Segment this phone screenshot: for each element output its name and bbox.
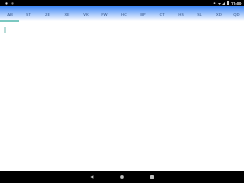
button[interactable]: XE (57, 6, 76, 21)
staticText: SL (197, 11, 202, 17)
button[interactable]: 2E (38, 6, 57, 21)
staticText: 11:00 (231, 1, 242, 6)
button[interactable]: HC (114, 6, 133, 21)
button[interactable]: FW (95, 6, 114, 21)
staticText: QD (233, 11, 240, 17)
button[interactable]: VK (76, 6, 95, 21)
staticText: HS (178, 11, 184, 17)
button[interactable]: Recents (146, 171, 158, 183)
button[interactable]: ST (19, 6, 38, 21)
staticText: 2E (45, 11, 50, 17)
staticText: AB (7, 11, 13, 17)
staticText: VK (83, 11, 89, 17)
staticText: BP (140, 11, 146, 17)
button[interactable]: CT (152, 6, 171, 21)
button[interactable]: BP (133, 6, 152, 21)
staticText: XE (64, 11, 70, 17)
staticText: XD (216, 11, 222, 17)
button[interactable]: Back (86, 171, 98, 183)
button[interactable]: AB (0, 6, 19, 21)
button[interactable]: QD (228, 6, 244, 21)
staticText: FW (101, 11, 108, 17)
staticText: CT (159, 11, 165, 17)
button[interactable]: XD (209, 6, 228, 21)
staticText: HC (121, 11, 127, 17)
staticText: ST (26, 11, 31, 17)
button[interactable]: Home (116, 171, 128, 183)
button[interactable]: HS (171, 6, 190, 21)
button[interactable]: SL (190, 6, 209, 21)
